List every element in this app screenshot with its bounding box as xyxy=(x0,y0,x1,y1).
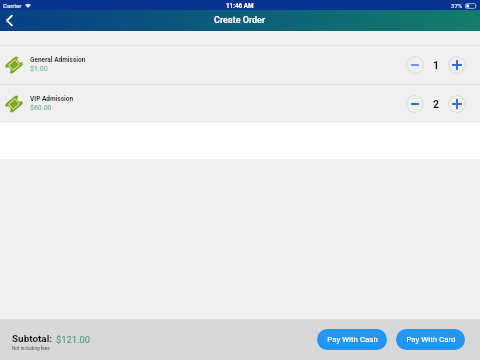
staticText: Create Order xyxy=(214,15,266,26)
staticText: General Admission xyxy=(30,56,86,64)
button[interactable]: Back xyxy=(0,10,19,31)
button[interactable]: Increase quantity xyxy=(448,95,466,113)
staticText: 37% xyxy=(451,2,463,9)
staticText: 2 xyxy=(433,98,440,110)
staticText: Not including fees xyxy=(12,346,50,352)
button[interactable]: General Admission xyxy=(0,46,480,84)
staticText: Pay With Card xyxy=(406,335,456,344)
staticText: 11:46 AM xyxy=(226,2,254,9)
staticText: VIP Admission xyxy=(30,95,74,103)
staticText: $60.00 xyxy=(30,104,52,112)
staticText: Subtotal: xyxy=(12,333,53,345)
staticText: Pay With Cash xyxy=(327,335,378,344)
button[interactable]: Increase quantity xyxy=(448,56,466,74)
staticText: Carrier xyxy=(3,2,22,9)
button[interactable]: Decrease quantity xyxy=(406,95,424,113)
button[interactable]: Decrease quantity xyxy=(406,56,424,74)
button[interactable]: Pay With Card xyxy=(396,329,465,350)
staticText: $121.00 xyxy=(56,334,91,345)
staticText: $1.00 xyxy=(30,65,48,73)
staticText: 1 xyxy=(433,59,440,71)
button[interactable]: Pay With Cash xyxy=(317,329,387,350)
button[interactable]: VIP Admission xyxy=(0,85,480,123)
